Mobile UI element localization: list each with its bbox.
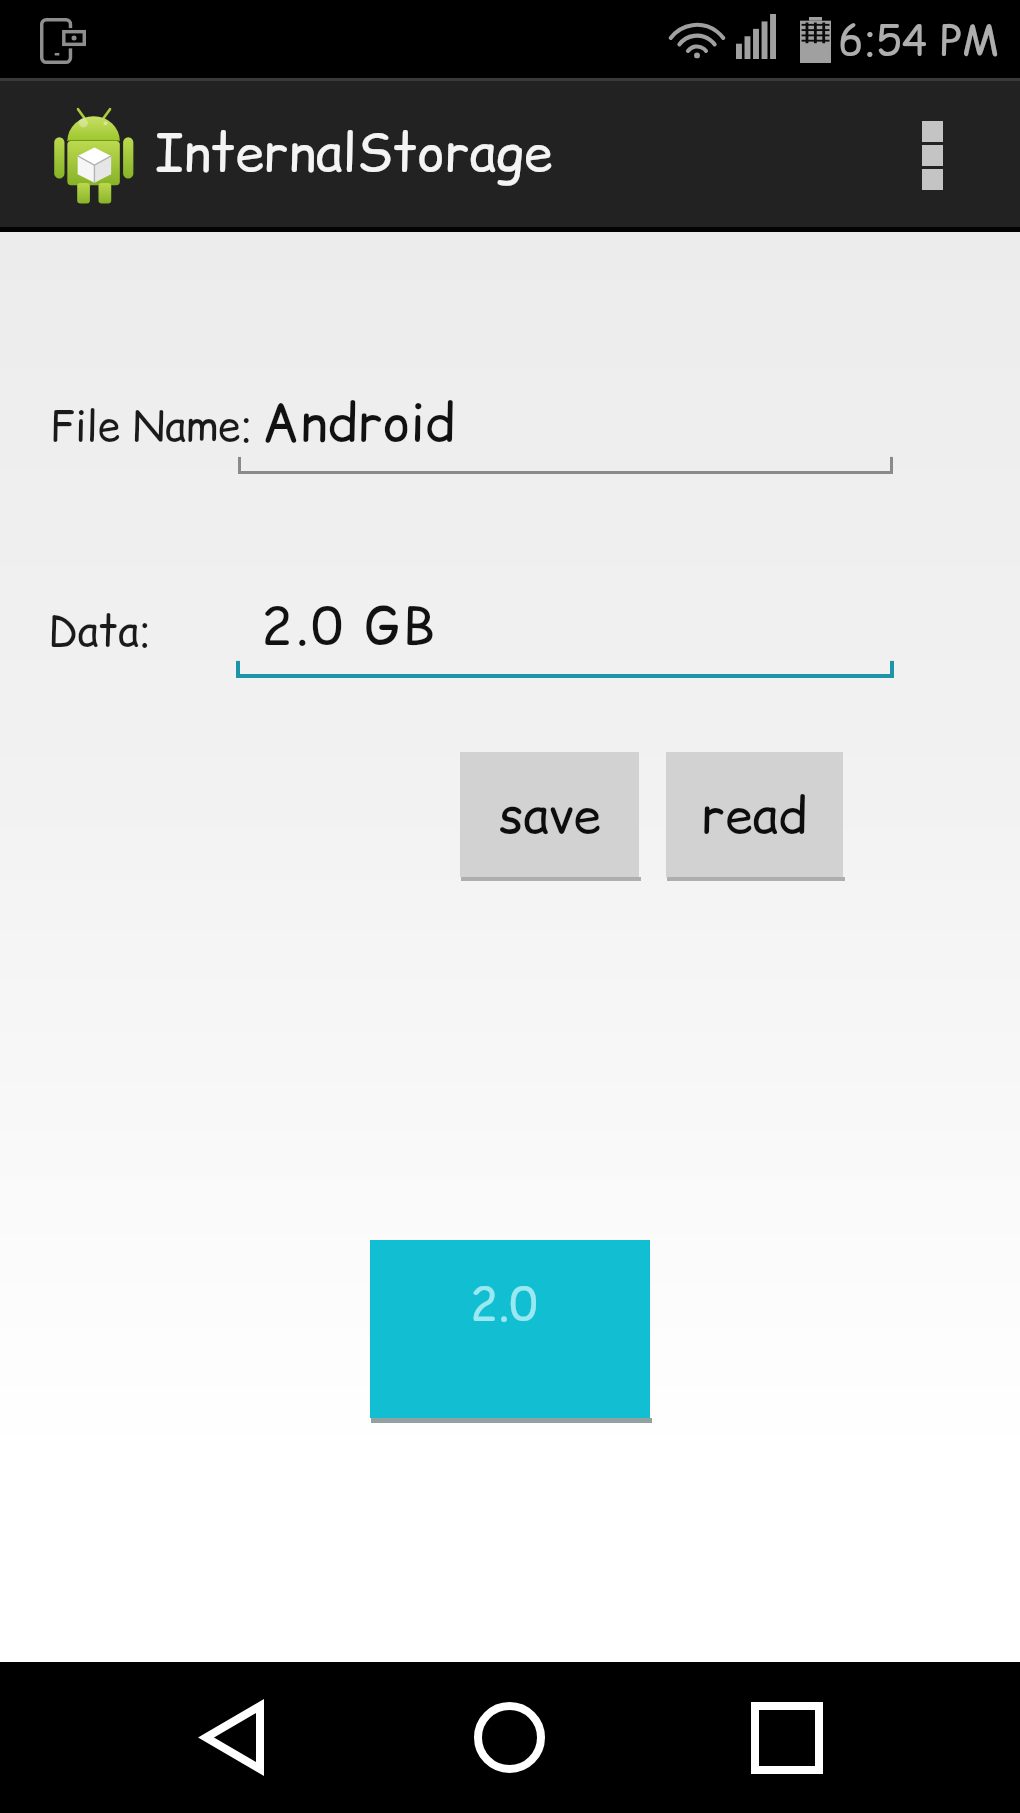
button[interactable]: Home: [429, 1662, 589, 1813]
button[interactable]: More options: [877, 78, 987, 232]
button[interactable]: Data field: [236, 583, 894, 678]
button[interactable]: Back: [152, 1662, 312, 1813]
staticText: InternalStorage: [155, 116, 553, 189]
staticText: read: [701, 780, 808, 850]
button[interactable]: read: [666, 752, 843, 877]
staticText: Data:: [48, 603, 152, 660]
button[interactable]: File name field: [238, 380, 893, 474]
staticText: save: [499, 780, 601, 850]
button[interactable]: Recent apps: [707, 1662, 867, 1813]
staticText: 2.0 GB: [261, 589, 438, 662]
button[interactable]: 2.0: [370, 1240, 650, 1418]
button[interactable]: save: [460, 752, 639, 877]
staticText: 6:54 PM: [838, 11, 999, 70]
staticText: 2.0: [470, 1271, 538, 1335]
staticText: Android: [262, 386, 456, 459]
staticText: File Name:: [50, 398, 253, 455]
